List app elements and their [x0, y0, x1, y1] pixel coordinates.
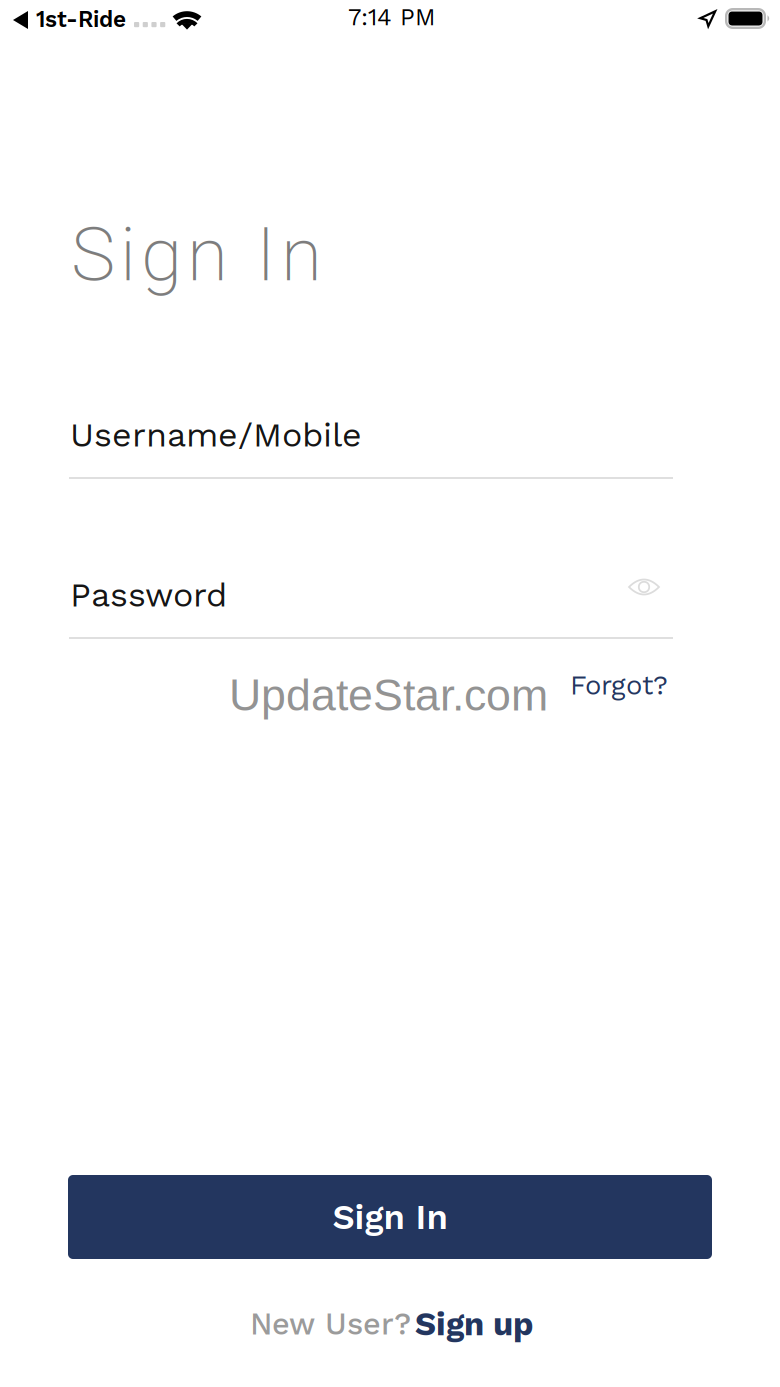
staticText: Sign In [71, 211, 322, 298]
staticText: 1st-Ride [36, 6, 126, 33]
staticText: UpdateStar.com [229, 670, 548, 720]
staticText: Password [70, 575, 227, 615]
button[interactable]: Forgot? [570, 665, 674, 705]
staticText: Username/Mobile [70, 415, 362, 455]
staticText: Sign In [332, 1197, 447, 1237]
staticText: New User? [250, 1306, 411, 1342]
button[interactable]: Sign In [68, 1175, 712, 1259]
button[interactable]: Sign up [415, 1306, 535, 1342]
staticText: Forgot? [570, 669, 668, 701]
staticText: 7:14 PM [348, 3, 435, 31]
staticText: Sign up [415, 1305, 533, 1343]
button[interactable]: Show password [616, 562, 672, 612]
